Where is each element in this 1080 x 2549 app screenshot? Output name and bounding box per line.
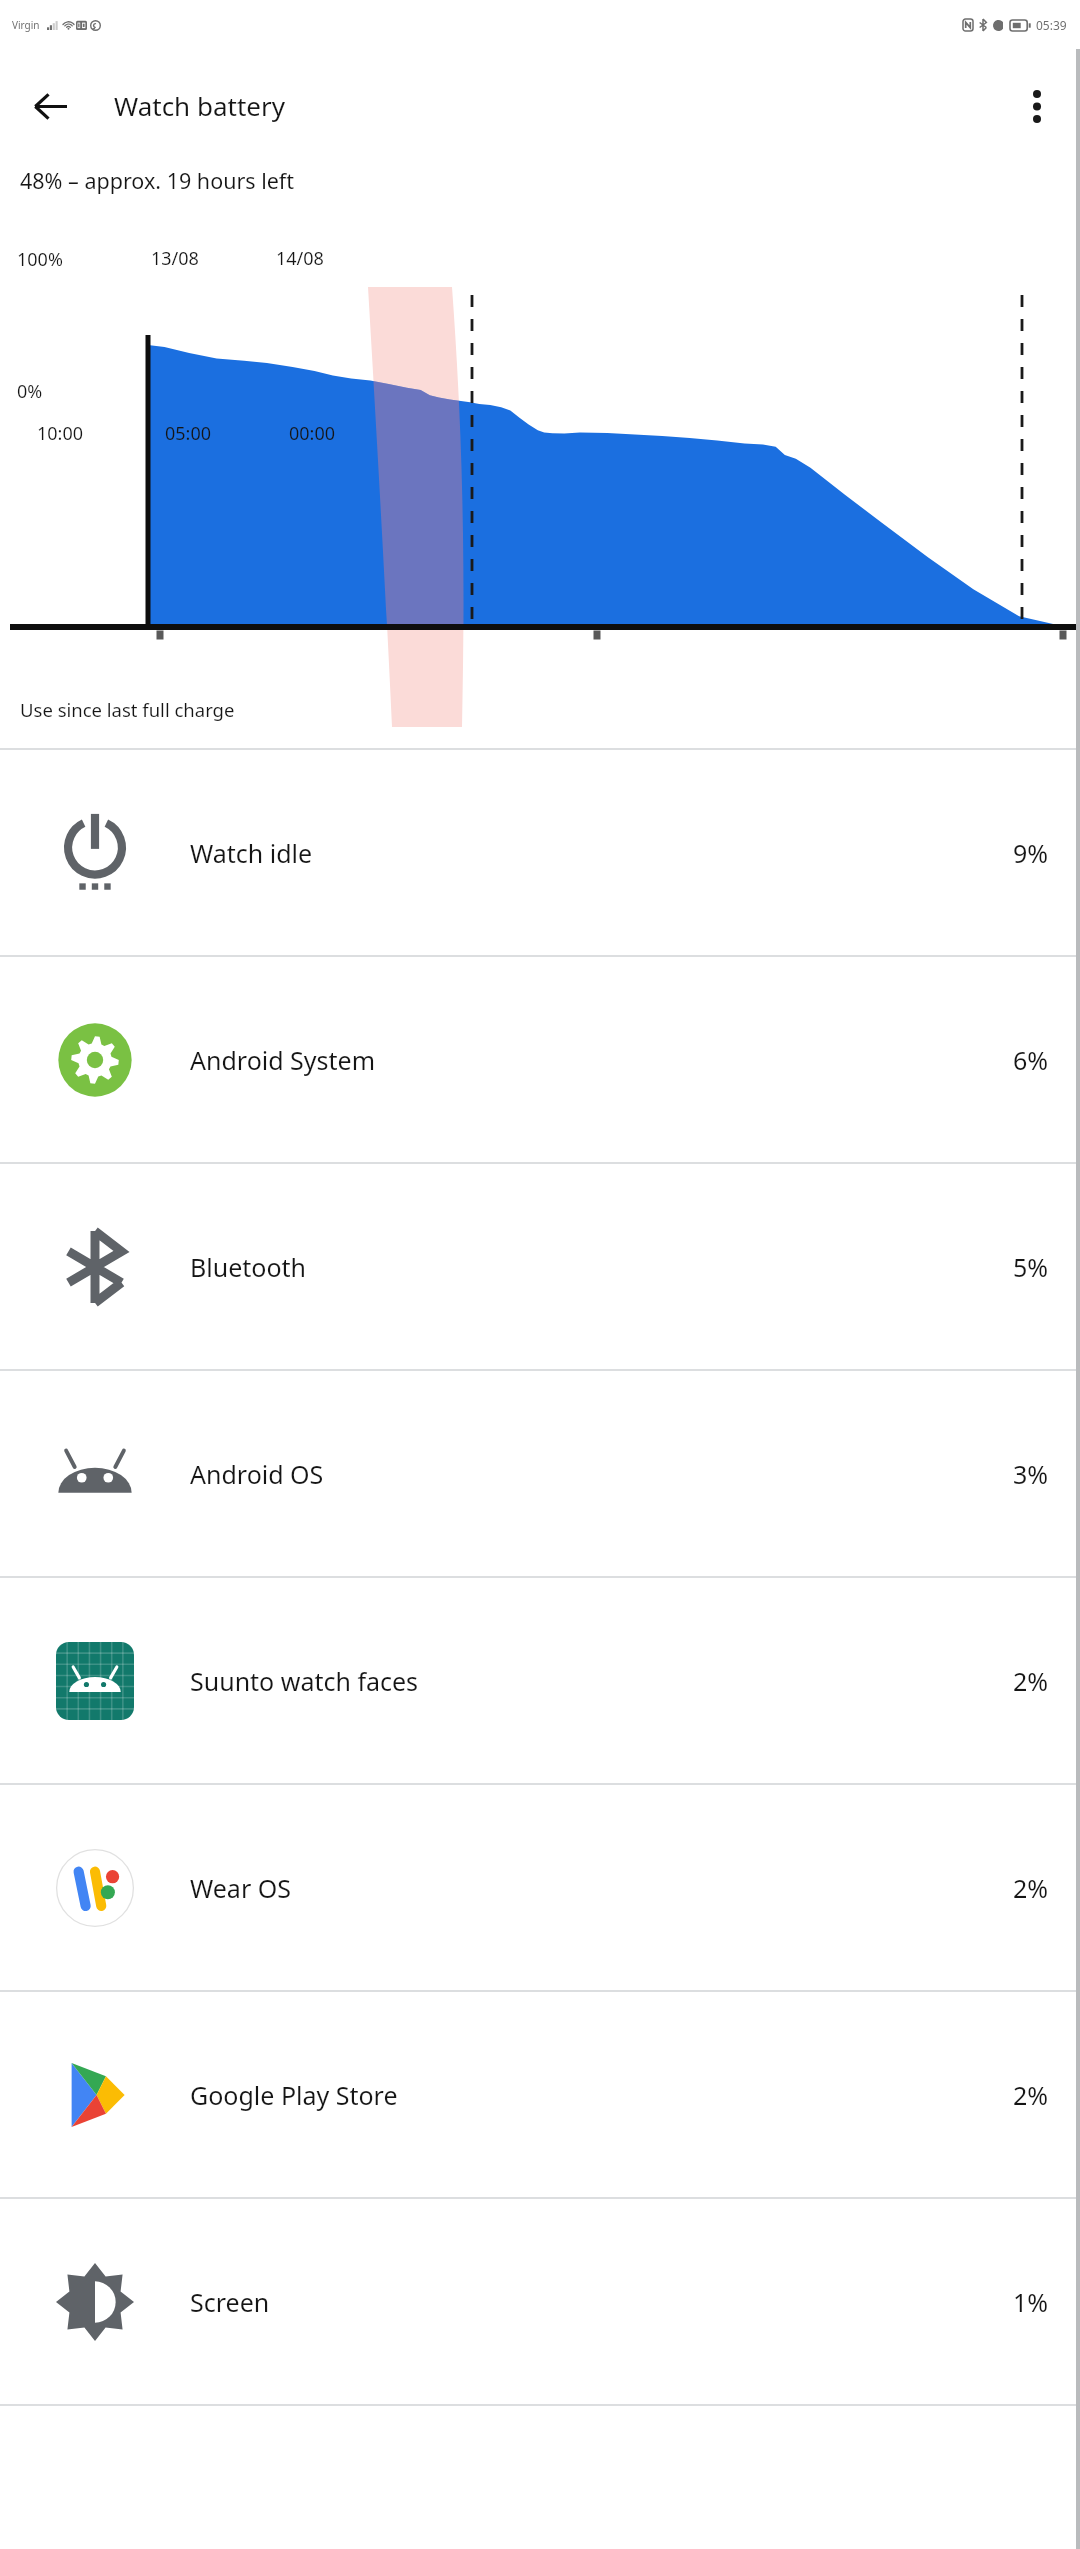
staticText: 5% [1012,1250,1048,1284]
button[interactable]: Back [18,74,82,138]
staticText: 10:00 [37,421,84,446]
staticText: 0% [17,379,43,404]
staticText: 2% [1012,1871,1048,1905]
button[interactable]: Wear OS [0,1785,1080,1990]
staticText: Wear OS [190,1871,1012,1905]
button[interactable]: Watch idle [0,750,1080,955]
staticText: 05:00 [165,421,212,446]
staticText: Google Play Store [190,2078,1012,2112]
staticText: 9% [1012,836,1048,870]
button[interactable]: Android System [0,957,1080,1162]
button[interactable]: More options [1006,75,1068,137]
button[interactable]: Google Play Store [0,1992,1080,2197]
staticText: Virgin [12,18,40,32]
staticText: Watch idle [190,836,1012,870]
staticText: Bluetooth [190,1250,1012,1284]
button[interactable]: Suunto watch faces [0,1578,1080,1783]
staticText: Android OS [190,1457,1012,1491]
button[interactable]: Android OS [0,1371,1080,1576]
staticText: 1% [1012,2285,1048,2319]
staticText: 6% [1012,1043,1048,1077]
staticText: 48% – approx. 19 hours left [20,166,295,195]
staticText: 2% [1012,2078,1048,2112]
staticText: Watch battery [114,88,285,123]
staticText: 2% [1012,1664,1048,1698]
staticText: Suunto watch faces [190,1664,1012,1698]
button[interactable]: Screen [0,2199,1080,2404]
staticText: 100% [17,247,63,272]
staticText: 14/08 [276,246,324,271]
staticText: Android System [190,1043,1012,1077]
staticText: 05:39 [1036,17,1067,33]
staticText: 00:00 [289,421,336,446]
staticText: 13/08 [151,246,199,271]
staticText: Use since last full charge [20,697,235,722]
button[interactable]: Bluetooth [0,1164,1080,1369]
staticText: Screen [190,2285,1012,2319]
staticText: 3% [1012,1457,1048,1491]
